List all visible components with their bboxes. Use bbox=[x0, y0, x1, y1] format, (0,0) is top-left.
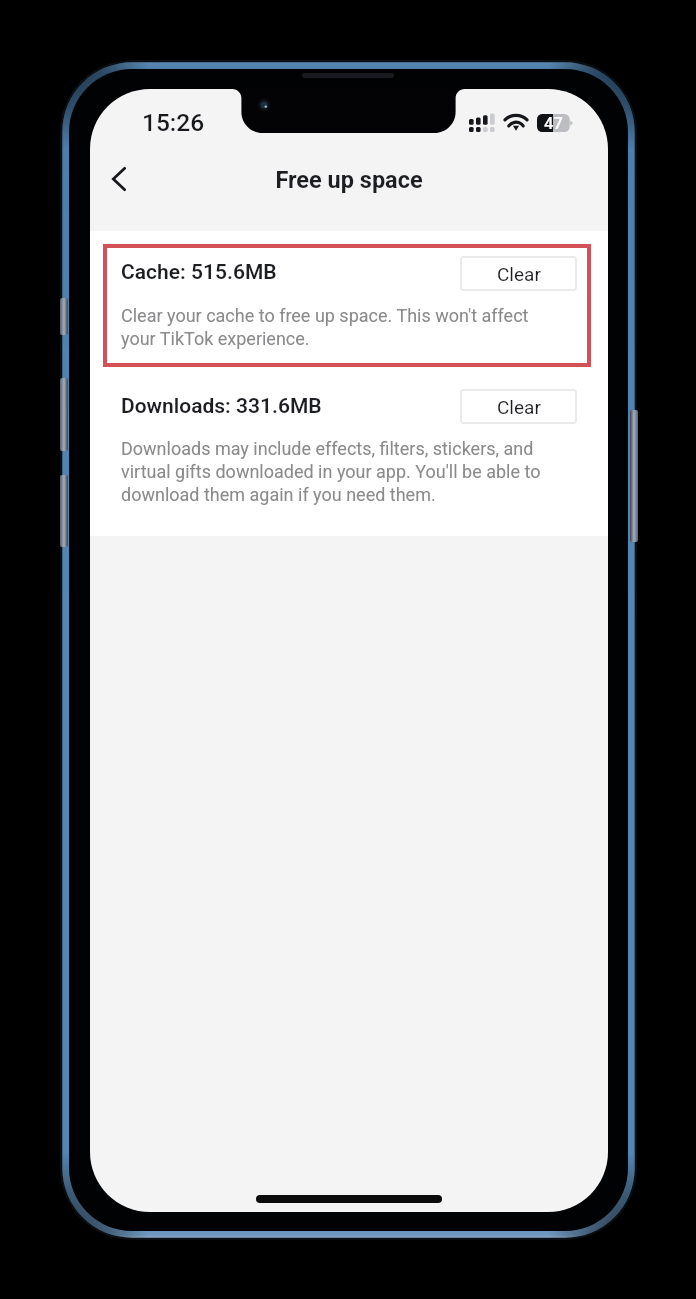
button[interactable]: Clear bbox=[460, 389, 577, 424]
staticText: Clear bbox=[497, 396, 541, 418]
staticText: Free up space bbox=[275, 166, 423, 194]
staticText: 47 bbox=[544, 114, 563, 132]
staticText: Clear your cache to free up space. This … bbox=[121, 304, 563, 350]
staticText: Downloads may include effects, filters, … bbox=[121, 437, 563, 506]
staticText: 15:26 bbox=[142, 108, 205, 137]
button[interactable]: Clear bbox=[460, 256, 577, 291]
staticText: Clear bbox=[497, 263, 541, 285]
button[interactable]: Back bbox=[95, 155, 143, 203]
staticText: Downloads: 331.6MB bbox=[121, 394, 322, 419]
staticText: Cache: 515.6MB bbox=[121, 260, 277, 285]
